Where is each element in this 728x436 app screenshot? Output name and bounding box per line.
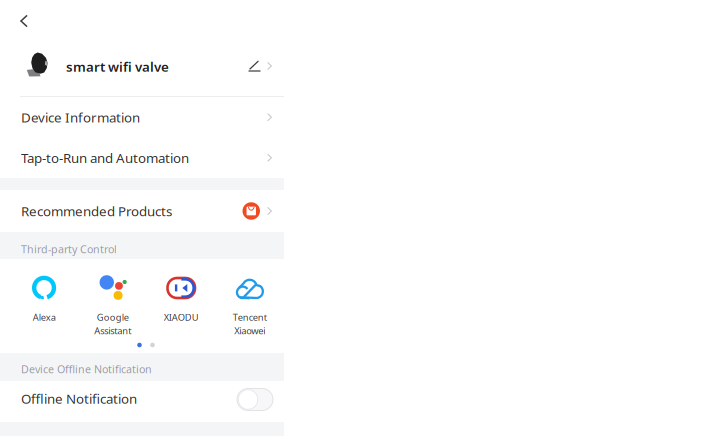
- button[interactable]: Back: [11, 7, 37, 35]
- staticText: Tencent: [233, 311, 267, 323]
- staticText: Device Information: [21, 108, 140, 126]
- button[interactable]: smart wifi valve: [0, 42, 284, 96]
- button[interactable]: Google: [78, 259, 147, 337]
- button[interactable]: Alexa: [10, 259, 78, 337]
- staticText: Device Offline Notification: [21, 362, 152, 376]
- staticText: Recommended Products: [21, 202, 172, 220]
- staticText: Third-party Control: [21, 242, 117, 256]
- button[interactable]: Tencent: [215, 259, 284, 337]
- staticText: Google: [97, 311, 129, 323]
- button[interactable]: Offline Notification: [0, 381, 284, 422]
- button[interactable]: Recommended Products: [0, 190, 284, 232]
- button[interactable]: Tap-to-Run and Automation: [0, 137, 284, 178]
- staticText: Offline Notification: [21, 390, 137, 407]
- button[interactable]: XIAODU: [147, 259, 215, 337]
- staticText: Xiaowei: [234, 324, 265, 337]
- staticText: Alexa: [33, 311, 56, 323]
- staticText: smart wifi valve: [66, 58, 169, 75]
- button[interactable]: Device Information: [0, 97, 284, 137]
- staticText: Assistant: [94, 324, 131, 337]
- staticText: XIAODU: [164, 311, 199, 323]
- staticText: Tap-to-Run and Automation: [21, 149, 189, 167]
